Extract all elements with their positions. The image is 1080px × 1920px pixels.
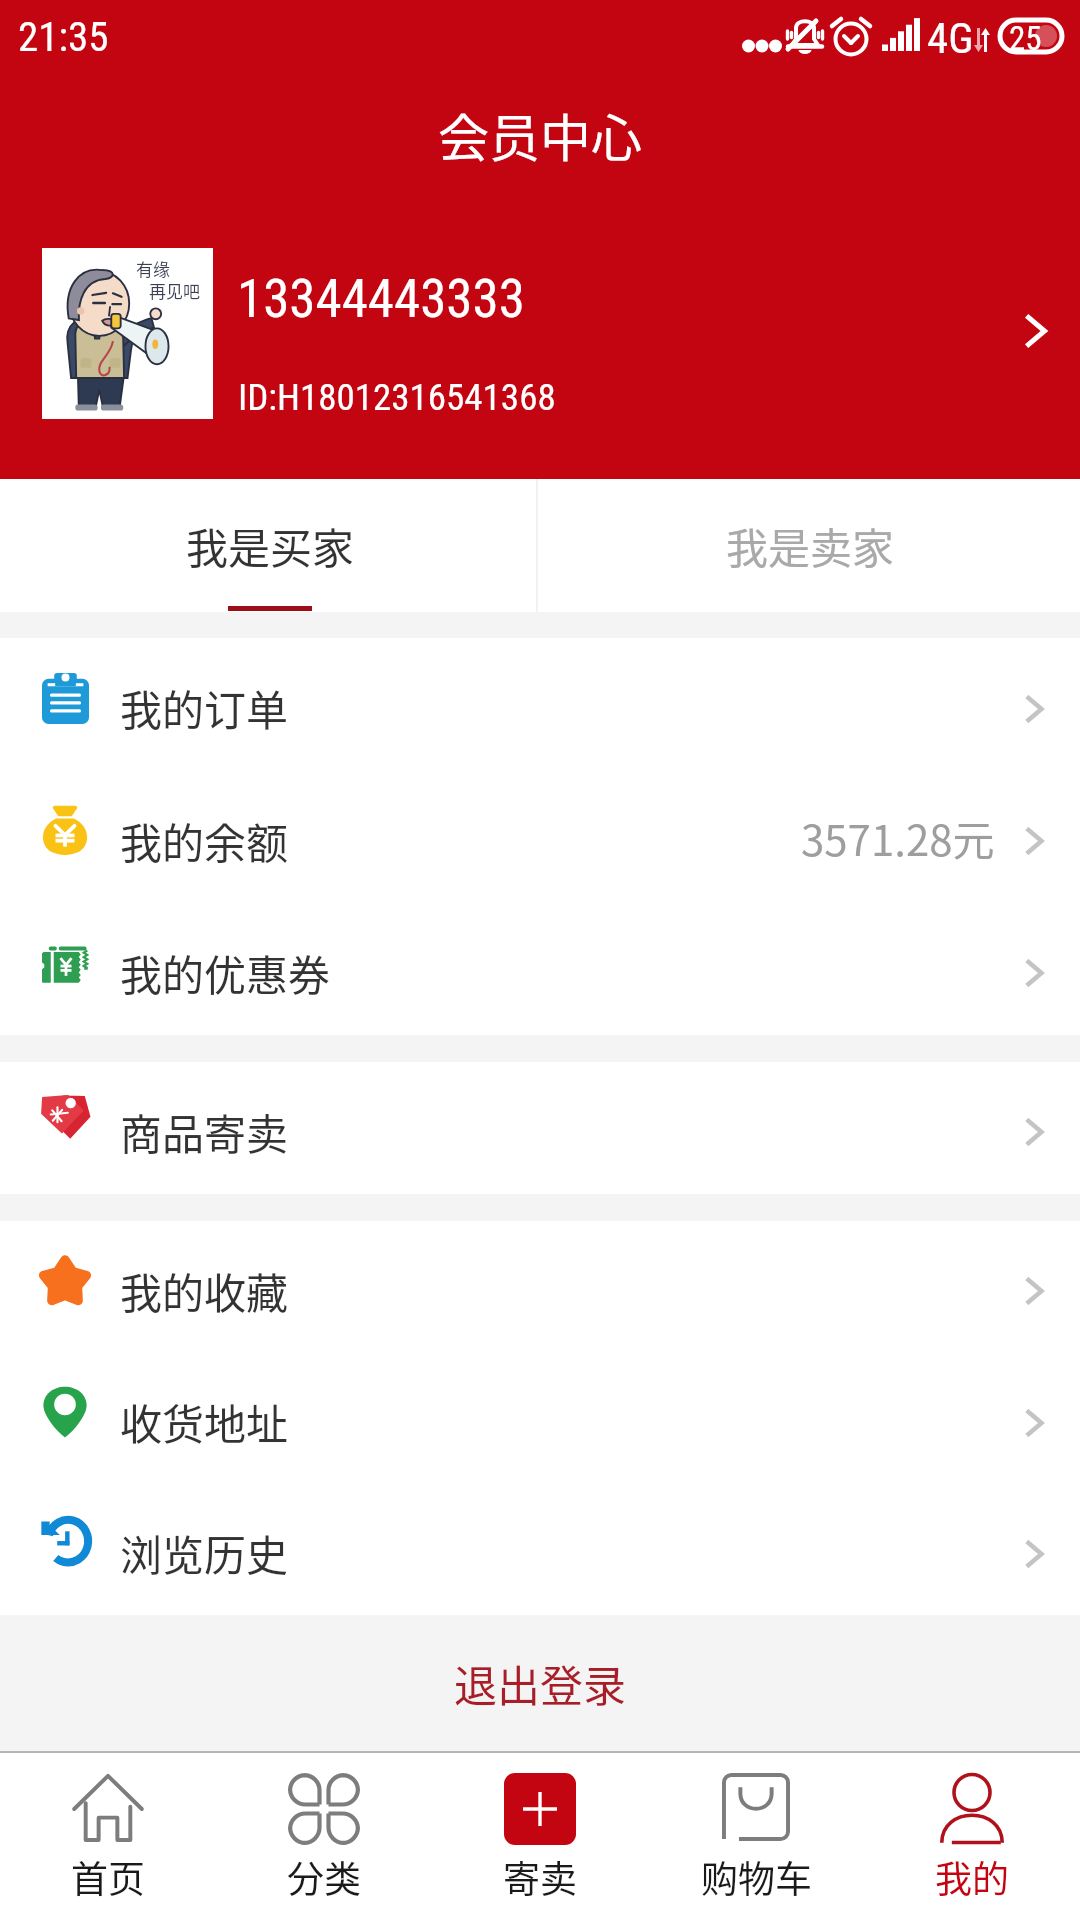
- other: 我的: [936, 1773, 1008, 1845]
- staticText: 商品寄卖: [120, 1101, 289, 1162]
- button[interactable]: 首页: [0, 1751, 216, 1920]
- staticText: 我的订单: [120, 677, 289, 738]
- staticText: 13344443333: [237, 268, 525, 330]
- staticText: ID:H18012316541368: [238, 376, 556, 419]
- staticText: 我是买家: [186, 515, 355, 576]
- other: 首页: [72, 1773, 144, 1845]
- staticText: 我的余额: [120, 810, 289, 871]
- staticText: 首页: [71, 1850, 145, 1904]
- staticText: 再见吧: [149, 278, 200, 303]
- button[interactable]: 分类: [216, 1751, 432, 1920]
- button[interactable]: 浏览历史: [0, 1484, 1080, 1615]
- other: 购物车: [722, 1773, 790, 1841]
- button[interactable]: 我是买家: [0, 479, 540, 612]
- button[interactable]: 我的余额: [0, 771, 1080, 903]
- staticText: 4G: [927, 13, 974, 63]
- other: 寄卖: [504, 1773, 576, 1845]
- staticText: 25: [1009, 19, 1042, 58]
- staticText: 寄卖: [503, 1850, 577, 1904]
- staticText: 购物车: [701, 1850, 812, 1904]
- other: 分类: [288, 1773, 360, 1845]
- button[interactable]: 商品寄卖: [0, 1062, 1080, 1194]
- staticText: 收货地址: [120, 1391, 289, 1452]
- button[interactable]: 我的: [864, 1751, 1080, 1920]
- button[interactable]: 有缘: [0, 231, 1080, 437]
- staticText: 我的优惠券: [120, 942, 331, 1003]
- button[interactable]: 购物车: [648, 1751, 864, 1920]
- button[interactable]: 退出登录: [0, 1615, 1080, 1751]
- button[interactable]: 我的订单: [0, 638, 1080, 771]
- button[interactable]: 我是卖家: [540, 479, 1080, 612]
- staticText: 有缘: [136, 256, 170, 281]
- button[interactable]: 寄卖: [432, 1751, 648, 1920]
- staticText: 分类: [287, 1850, 361, 1904]
- button[interactable]: 我的收藏: [0, 1221, 1080, 1353]
- staticText: 我的: [935, 1850, 1009, 1904]
- staticText: 我是卖家: [726, 515, 895, 576]
- button[interactable]: 我的优惠券: [0, 903, 1080, 1035]
- staticText: 会员中心: [438, 98, 643, 172]
- staticText: 浏览历史: [120, 1522, 289, 1583]
- staticText: 21:35: [18, 13, 109, 61]
- button[interactable]: 收货地址: [0, 1353, 1080, 1484]
- staticText: 我的收藏: [120, 1260, 289, 1321]
- staticText: 3571.28元: [801, 807, 995, 868]
- other: 个人资料: [1026, 315, 1046, 347]
- staticText: 退出登录: [454, 1652, 626, 1714]
